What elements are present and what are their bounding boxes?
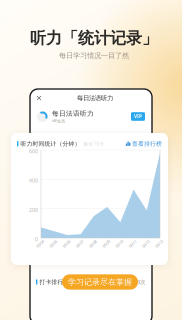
staticText: 最近10天	[83, 141, 104, 147]
staticText: 打卡排行	[39, 278, 63, 286]
staticText: 400	[29, 177, 38, 184]
staticText: 听力时间统计（分钟）	[20, 140, 80, 147]
staticText: 每日法语听力	[52, 109, 94, 118]
staticText: 09-07	[75, 241, 84, 247]
staticText: 共53次	[128, 278, 146, 286]
staticText: 09-09	[102, 241, 111, 247]
staticText: 600	[29, 148, 38, 155]
staticText: VIP	[134, 113, 142, 120]
staticText: 09-11	[128, 241, 137, 247]
button[interactable]: 每日法语听力	[30, 107, 152, 126]
staticText: 09-08	[88, 241, 97, 247]
staticText: VIP会员	[52, 118, 65, 124]
staticText: 09-06	[62, 241, 71, 247]
staticText: 每日学习情况一目了然	[59, 51, 129, 60]
button[interactable]: 学习记录尽在掌握	[62, 274, 138, 290]
staticText: 09-12	[141, 241, 150, 247]
staticText: 09-05	[49, 241, 58, 247]
staticText: 每日法语听力	[77, 94, 113, 102]
staticText: 09-04	[35, 241, 44, 247]
button[interactable]: Close	[34, 93, 44, 103]
staticText: 0	[35, 236, 38, 243]
staticText: 学习记录尽在掌握	[68, 277, 132, 287]
staticText: 听力「统计记录」	[30, 28, 158, 48]
staticText: 09-13	[154, 241, 163, 247]
staticText: 09-10	[115, 241, 124, 247]
staticText: 查看排行榜	[132, 140, 162, 147]
staticText: 200	[29, 206, 38, 213]
button[interactable]: 查看排行榜	[126, 140, 162, 147]
